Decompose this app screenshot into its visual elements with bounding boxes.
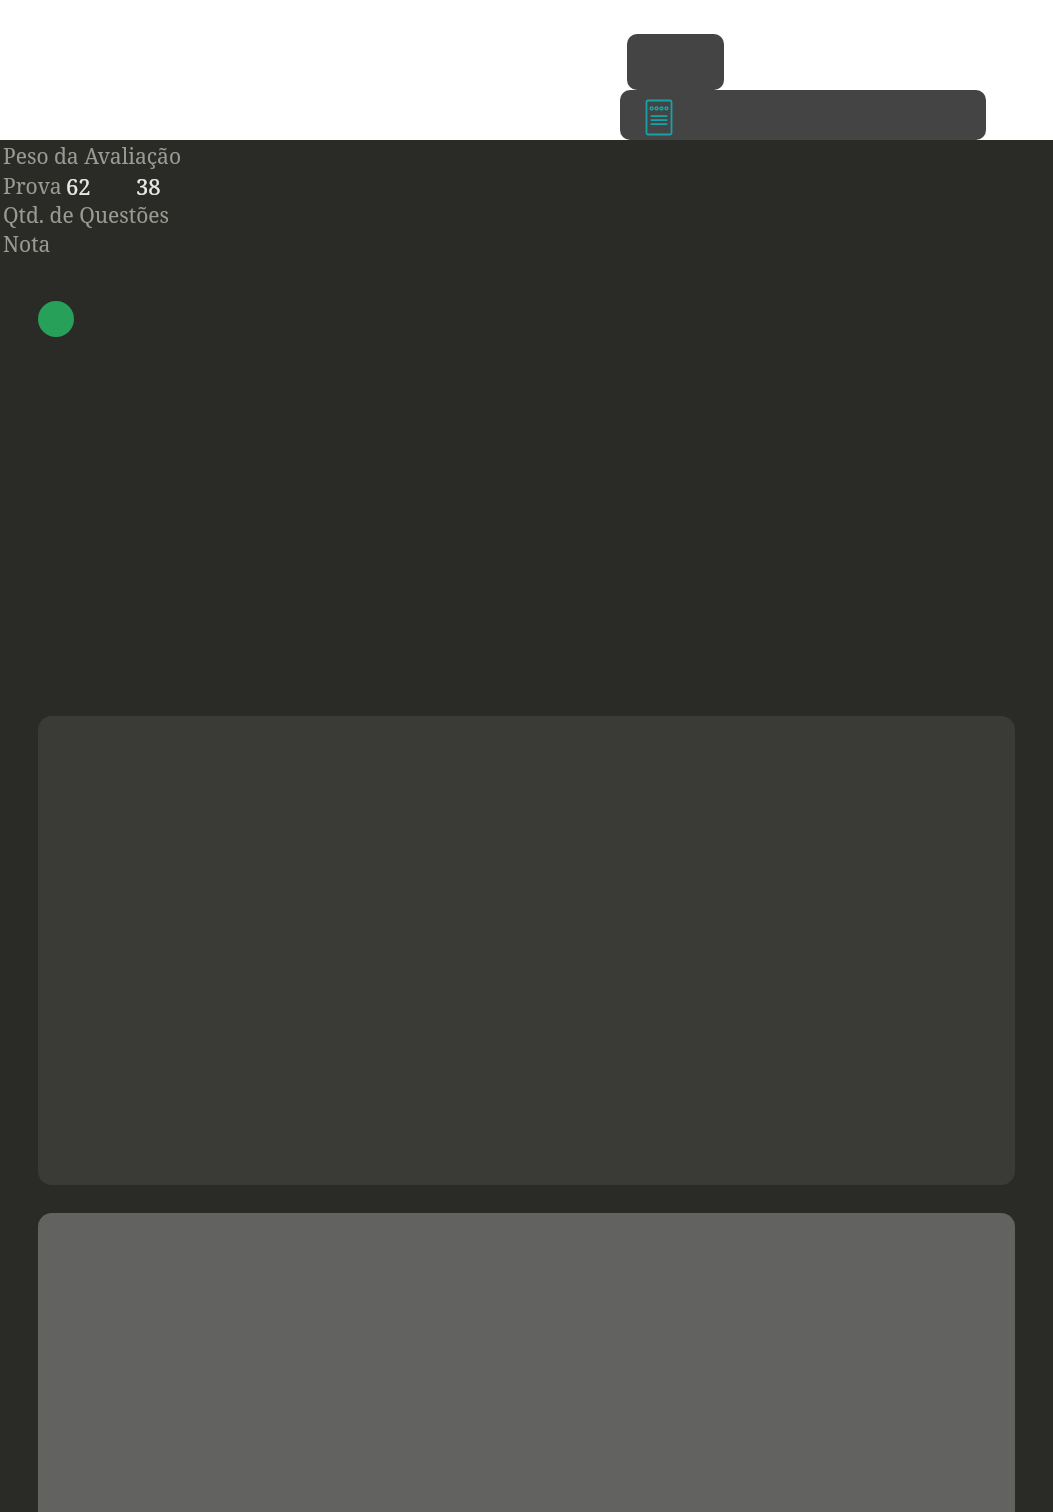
staticText: Peso da Avaliação xyxy=(3,142,181,171)
button[interactable]: Status ativo xyxy=(38,301,74,337)
button[interactable]: Documento xyxy=(646,100,672,135)
staticText: 62 xyxy=(66,171,91,201)
staticText: 38 xyxy=(136,171,161,201)
button[interactable]: Painel superior xyxy=(627,34,724,90)
staticText: Qtd. de Questões xyxy=(3,201,170,230)
staticText: Nota xyxy=(3,230,51,259)
staticText: Prova xyxy=(3,172,62,201)
button[interactable]: Barra de ferramentas xyxy=(620,90,986,140)
